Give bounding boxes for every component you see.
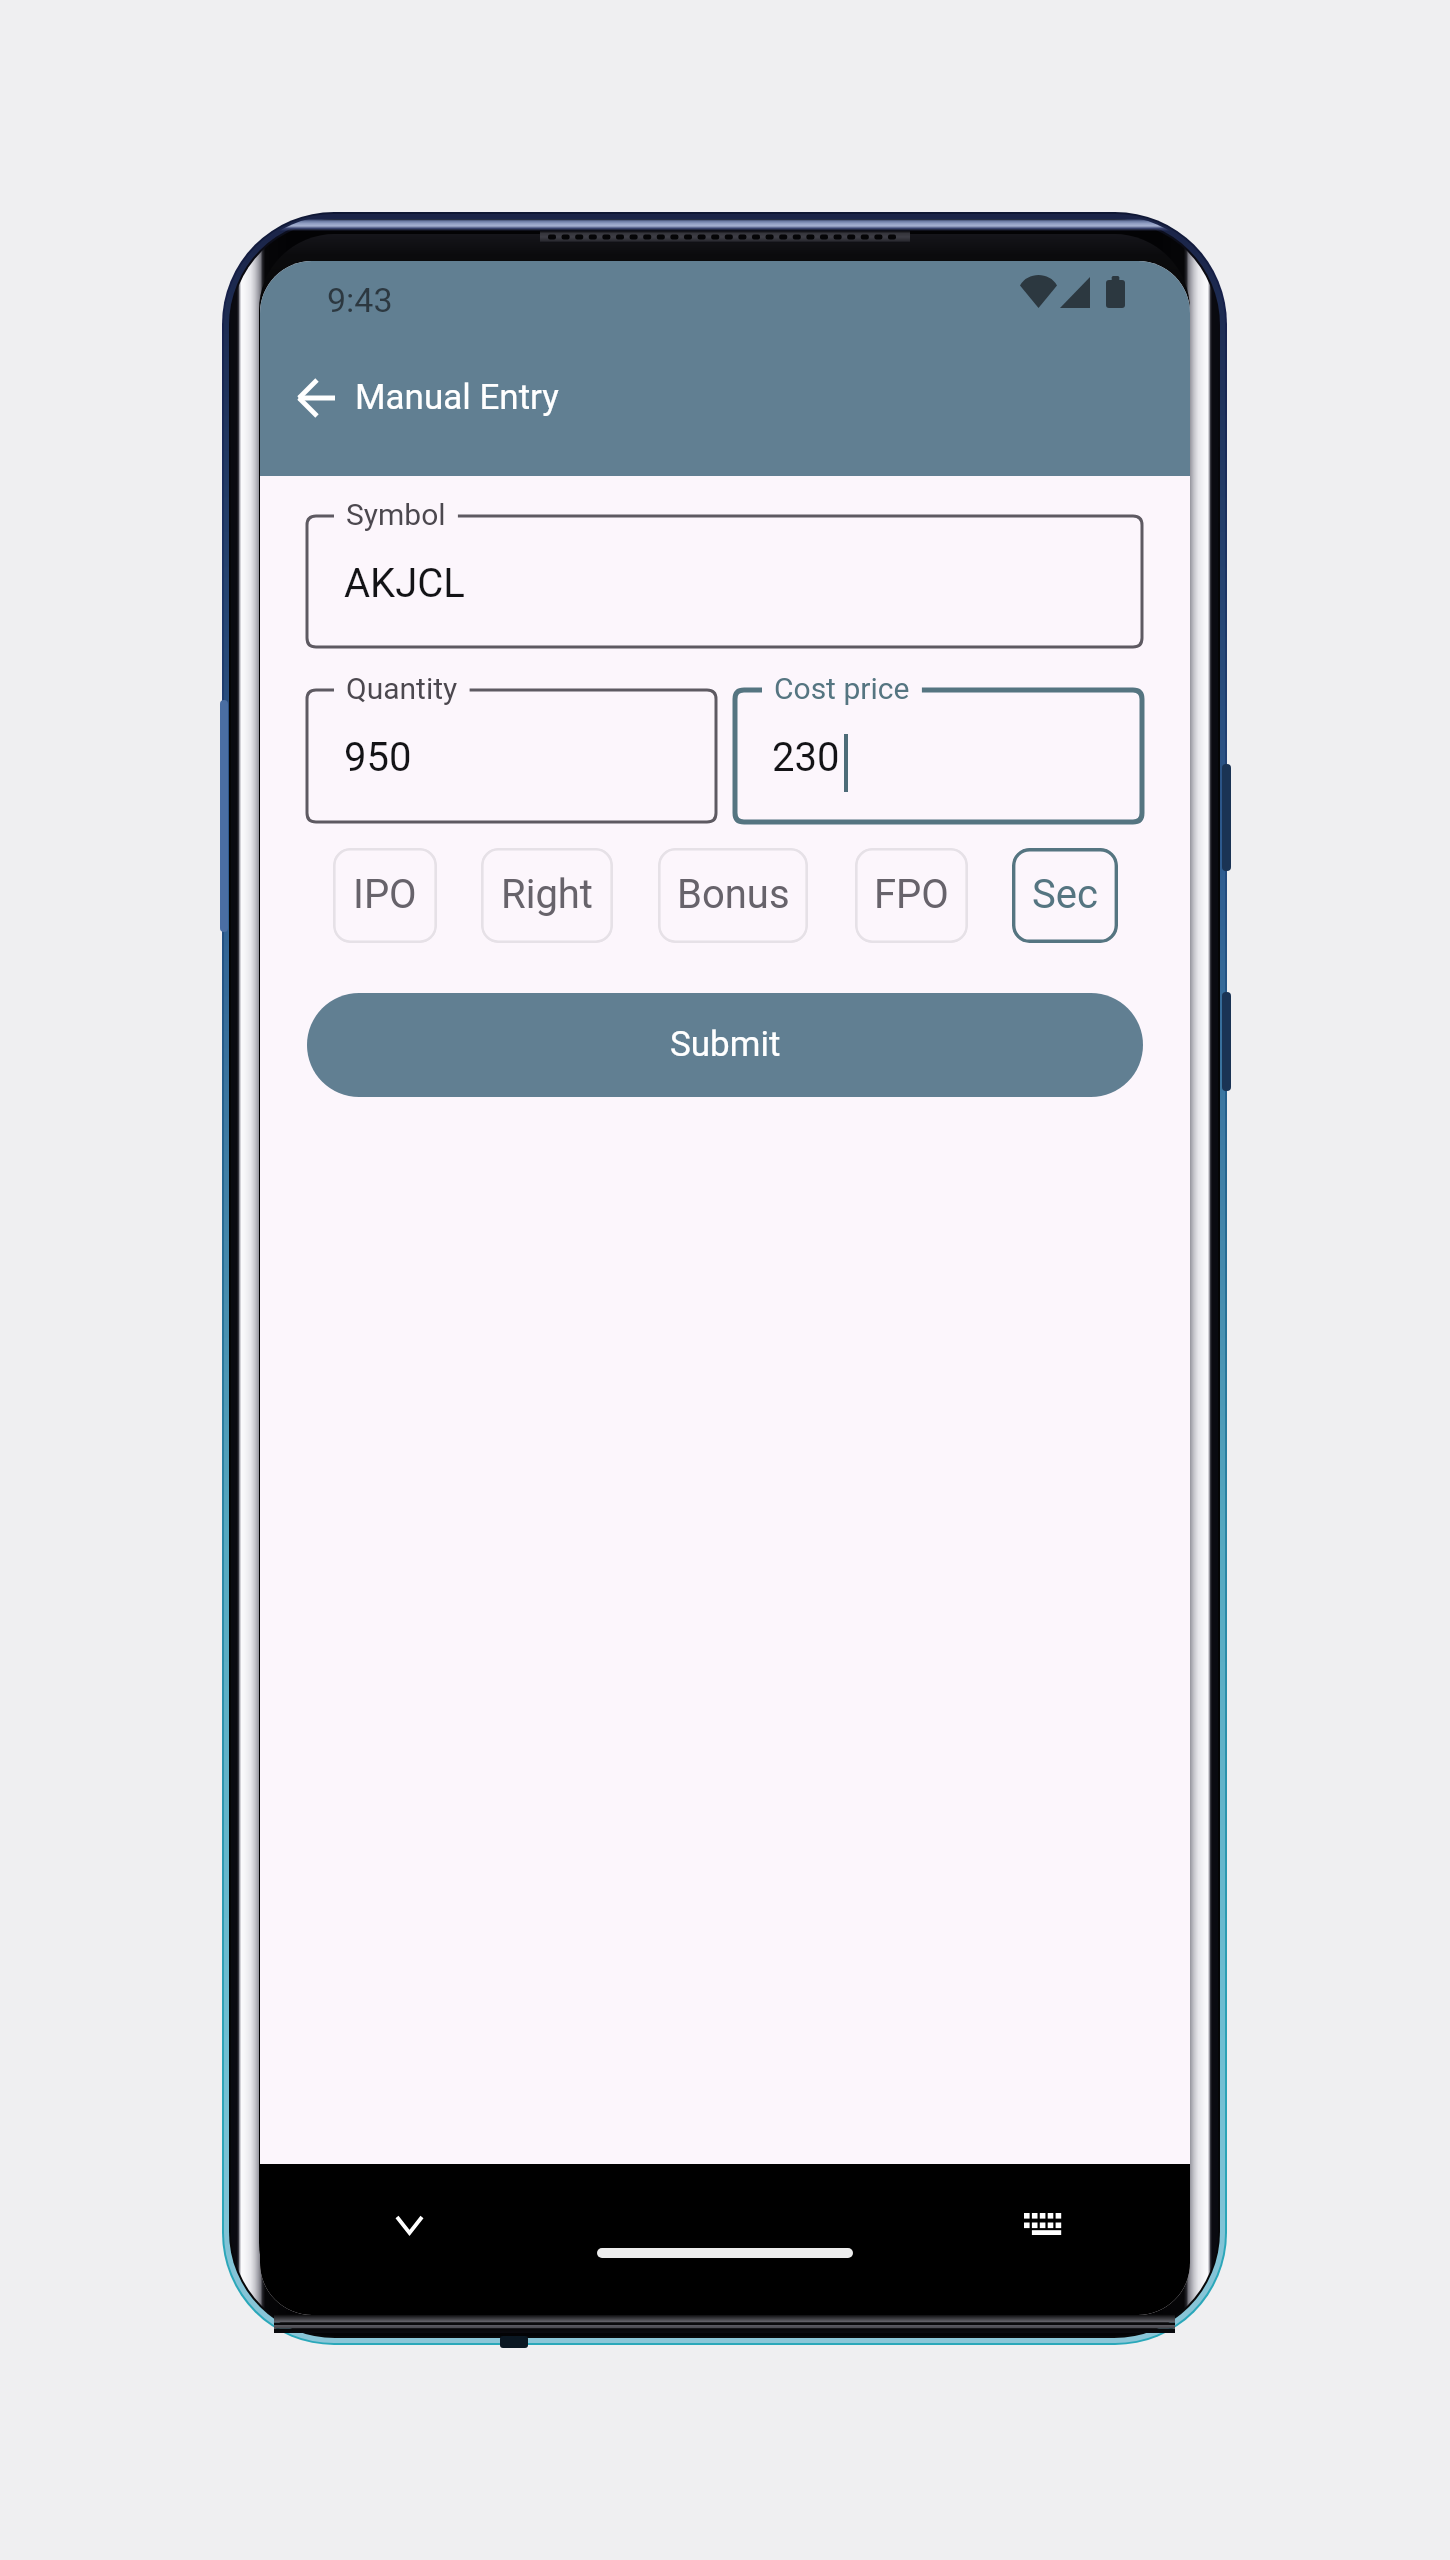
staticText: FPO: [874, 871, 949, 918]
staticText: Bonus: [677, 871, 790, 918]
staticText: Right: [501, 871, 593, 918]
staticText: 950: [344, 734, 412, 781]
staticText: Cost price: [774, 671, 910, 706]
button[interactable]: FPO: [855, 848, 968, 943]
button[interactable]: IPO: [333, 848, 437, 943]
staticText: Manual Entry: [355, 377, 559, 418]
staticText: Submit: [670, 1024, 781, 1065]
staticText: 9:43: [327, 280, 393, 320]
button[interactable]: Switch keyboard: [1014, 2196, 1070, 2252]
button[interactable]: Sec: [1012, 848, 1118, 943]
staticText: AKJCL: [344, 560, 465, 607]
staticText: 230: [772, 734, 840, 781]
button[interactable]: Right: [481, 848, 613, 943]
button[interactable]: Bonus: [658, 848, 808, 943]
staticText: Quantity: [346, 671, 458, 706]
button[interactable]: Submit: [307, 993, 1143, 1097]
button[interactable]: Back: [280, 362, 352, 434]
staticText: Symbol: [346, 497, 446, 532]
staticText: Sec: [1032, 871, 1098, 918]
staticText: IPO: [353, 871, 417, 918]
button[interactable]: Hide keyboard: [381, 2197, 437, 2253]
